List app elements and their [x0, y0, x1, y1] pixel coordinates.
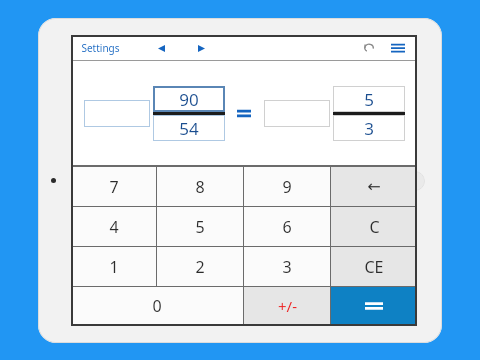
- button[interactable]: 54: [153, 115, 225, 141]
- button[interactable]: +/-: [244, 287, 330, 325]
- button[interactable]: 90: [153, 86, 225, 112]
- staticText: 8: [195, 176, 205, 198]
- button[interactable]: 9: [244, 167, 330, 206]
- button[interactable]: 8: [157, 167, 243, 206]
- staticText: 7: [109, 176, 119, 198]
- staticText: 1: [109, 256, 119, 278]
- staticText: 5: [364, 88, 374, 111]
- button[interactable]: Backspace: [331, 167, 417, 206]
- staticText: +/-: [278, 296, 297, 316]
- staticText: CE: [364, 256, 384, 278]
- button[interactable]: 0: [71, 287, 243, 325]
- staticText: 3: [364, 117, 374, 140]
- staticText: 6: [282, 216, 292, 238]
- staticText: 0: [152, 295, 162, 317]
- button[interactable]: CE: [331, 247, 417, 286]
- staticText: 4: [109, 216, 119, 238]
- button[interactable]: 4: [71, 207, 156, 246]
- staticText: ←: [367, 177, 381, 196]
- button[interactable]: Undo: [359, 38, 379, 58]
- staticText: 9: [282, 176, 292, 198]
- button[interactable]: Previous: [152, 39, 170, 57]
- button[interactable]: 6: [244, 207, 330, 246]
- staticText: 90: [179, 88, 199, 111]
- button[interactable]: Equals: [331, 287, 417, 325]
- button[interactable]: 3: [244, 247, 330, 286]
- staticText: 2: [195, 256, 205, 278]
- button[interactable]: 1: [71, 247, 156, 286]
- staticText: Settings: [81, 41, 120, 55]
- button[interactable]: 3: [333, 115, 405, 141]
- button[interactable]: 5: [333, 86, 405, 112]
- staticText: C: [369, 216, 380, 238]
- button[interactable]: Settings: [79, 38, 122, 58]
- staticText: 3: [282, 256, 292, 278]
- button[interactable]: Next: [192, 39, 210, 57]
- button[interactable]: C: [331, 207, 417, 246]
- staticText: 54: [179, 117, 199, 140]
- button[interactable]: 7: [71, 167, 156, 206]
- button[interactable]: Input field: [264, 100, 330, 127]
- button[interactable]: 5: [157, 207, 243, 246]
- staticText: 5: [195, 216, 205, 238]
- button[interactable]: 2: [157, 247, 243, 286]
- button[interactable]: Input field: [84, 100, 150, 127]
- button[interactable]: Menu: [387, 37, 409, 59]
